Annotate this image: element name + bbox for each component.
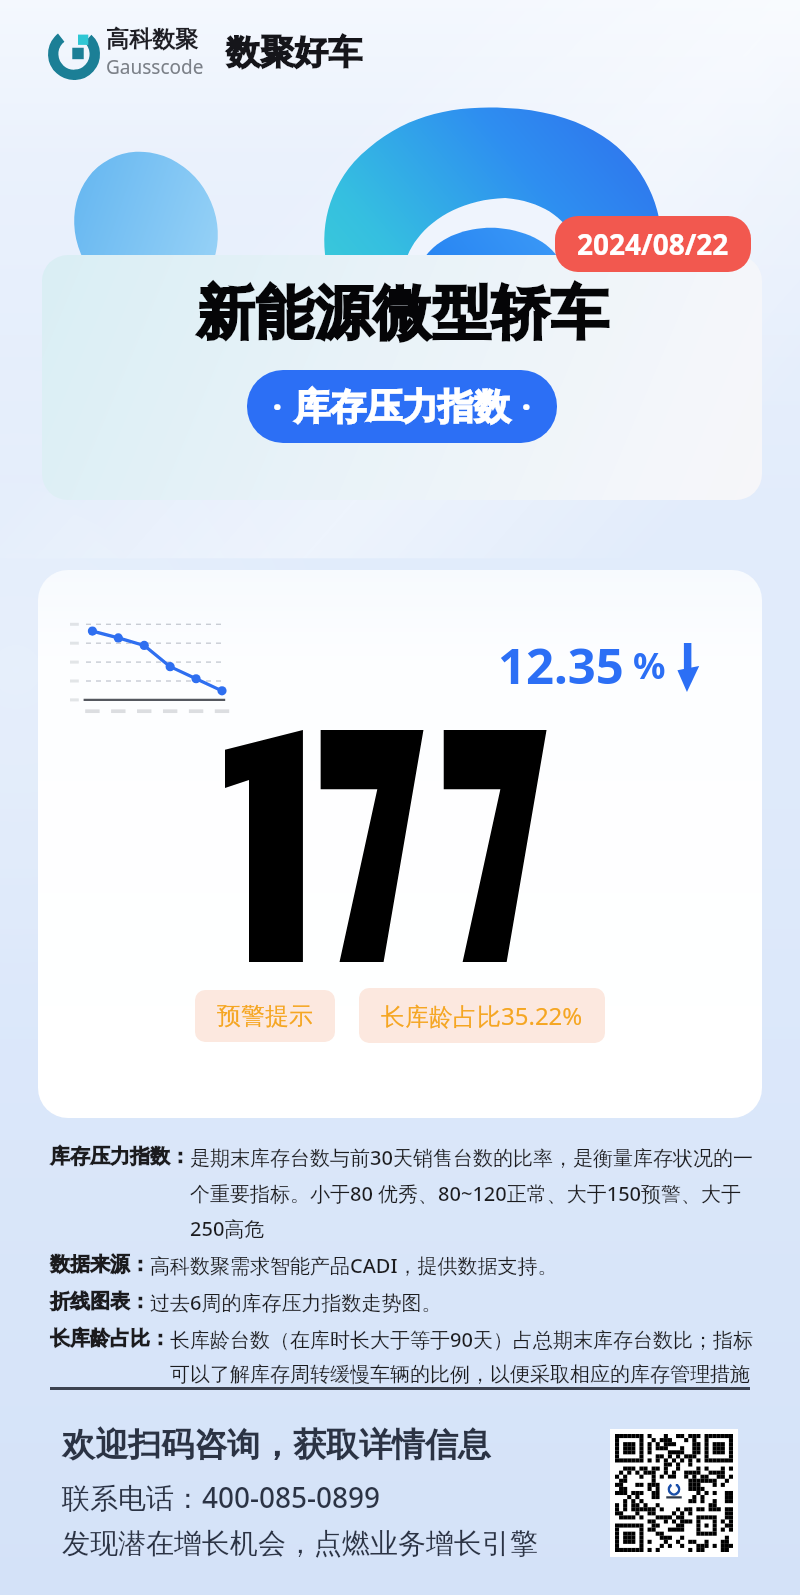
button[interactable]: 长库龄占比35.22% (359, 988, 605, 1043)
staticText: 是期末库存台数与前30天销售台数的比率，是衡量库存状况的一个重要指标。小于80 … (190, 1144, 754, 1242)
staticText: 长库龄占比35.22% (381, 999, 583, 1032)
staticText: · (273, 386, 282, 427)
staticText: 联系电话：400-085-0899 (62, 1478, 381, 1516)
staticText: 数聚好车 (226, 31, 362, 74)
staticText: 欢迎扫码咨询，获取详情信息 (62, 1424, 491, 1466)
staticText: · (522, 386, 531, 427)
staticText: 12.35 (498, 632, 624, 699)
staticText: 发现潜在增长机会，点燃业务增长引擎 (62, 1526, 538, 1561)
staticText: 过去6周的库存压力指数走势图。 (150, 1289, 442, 1316)
staticText: 预警提示 (217, 1001, 313, 1031)
staticText: 库存压力指数 (294, 384, 510, 429)
button[interactable]: 预警提示 (195, 990, 335, 1042)
staticText: Gausscode (106, 54, 204, 80)
button[interactable]: 新能源微型轿车 (42, 255, 762, 500)
button[interactable]: Date 2024/08/22 (555, 216, 751, 272)
staticText: 2024/08/22 (577, 225, 729, 263)
staticText: 长库龄台数（在库时长大于等于90天）占总期末库存台数比；指标可以了解库存周转缓慢… (170, 1326, 754, 1387)
staticText: 折线图表： (50, 1289, 150, 1314)
staticText: 库存压力指数： (50, 1144, 190, 1169)
staticText: 新能源微型轿车 (196, 277, 609, 350)
staticText: % (633, 641, 666, 690)
staticText: 数据来源： (50, 1252, 150, 1277)
staticText: 高科数聚 (106, 25, 198, 54)
button[interactable]: QR code (610, 1429, 738, 1557)
button[interactable]: · (247, 370, 557, 443)
staticText: 长库龄占比： (50, 1326, 170, 1351)
button[interactable]: 12.35 (38, 570, 762, 1118)
staticText: 高科数聚需求智能产品CADI，提供数据支持。 (150, 1252, 558, 1279)
